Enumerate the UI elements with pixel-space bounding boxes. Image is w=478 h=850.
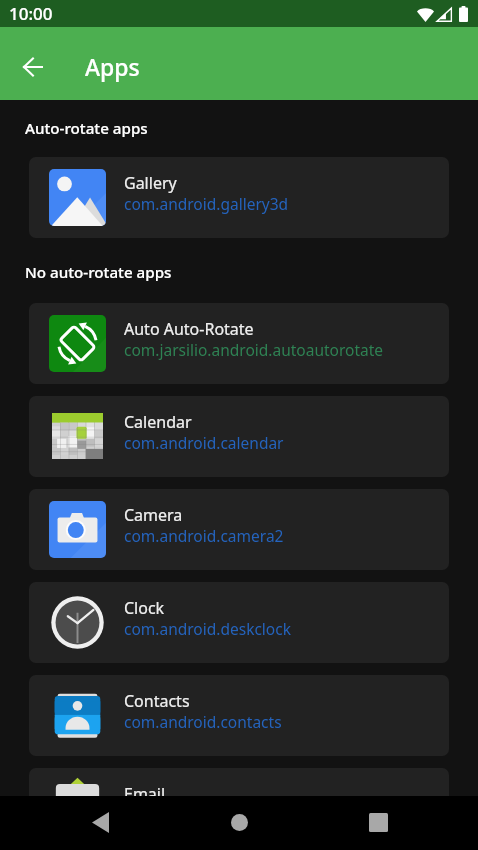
staticText: Calendar (124, 411, 192, 433)
staticText: com.android.camera2 (124, 525, 284, 546)
button[interactable]: Contacts (29, 675, 449, 756)
button[interactable]: Calendar (29, 396, 449, 477)
button[interactable]: Back (11, 45, 55, 89)
staticText: com.android.deskclock (124, 618, 291, 639)
staticText: Contacts (124, 690, 190, 712)
staticText: Gallery (124, 172, 177, 194)
button[interactable]: Auto Auto-Rotate (29, 303, 449, 384)
staticText: Email (124, 783, 166, 805)
staticText: com.android.gallery3d (124, 193, 289, 214)
button[interactable]: Recents (354, 798, 402, 846)
button[interactable]: Gallery (29, 157, 449, 238)
staticText: Auto-rotate apps (25, 118, 148, 139)
button[interactable]: Email (29, 768, 449, 849)
staticText: No auto-rotate apps (25, 262, 172, 283)
staticText: Clock (124, 597, 165, 619)
button[interactable]: Clock (29, 582, 449, 663)
staticText: com.android.email (124, 804, 261, 825)
button[interactable]: Home (215, 798, 263, 846)
staticText: Apps (85, 51, 140, 82)
button[interactable]: Back (76, 798, 124, 846)
staticText: Camera (124, 504, 183, 526)
button[interactable]: Camera (29, 489, 449, 570)
staticText: com.android.contacts (124, 711, 282, 732)
staticText: 10:00 (9, 2, 53, 25)
staticText: Auto Auto-Rotate (124, 318, 254, 340)
staticText: com.android.calendar (124, 432, 284, 453)
staticText: com.jarsilio.android.autoautorotate (124, 339, 384, 360)
